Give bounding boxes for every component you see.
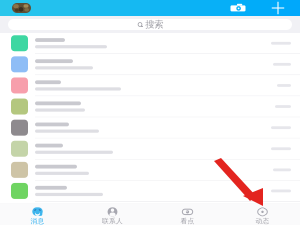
staticText: 消息 xyxy=(30,217,44,225)
button[interactable] xyxy=(0,75,300,96)
button[interactable]: 动态 xyxy=(225,204,300,225)
button[interactable] xyxy=(0,181,300,202)
staticText: 联系人 xyxy=(102,217,123,225)
button[interactable] xyxy=(0,96,300,117)
button[interactable]: Profile xyxy=(0,0,43,16)
button[interactable]: Camera xyxy=(225,0,251,16)
button[interactable]: 看点 xyxy=(150,204,225,225)
staticText: 搜索 xyxy=(145,19,163,30)
button[interactable] xyxy=(0,160,300,181)
button[interactable]: 消息 xyxy=(0,204,75,225)
button[interactable]: 联系人 xyxy=(75,204,150,225)
button[interactable] xyxy=(0,54,300,75)
button[interactable] xyxy=(0,117,300,138)
button[interactable]: Add xyxy=(265,0,291,16)
staticText: 看点 xyxy=(180,217,194,225)
button[interactable] xyxy=(0,138,300,160)
staticText: 动态 xyxy=(255,217,269,225)
button[interactable] xyxy=(0,33,300,54)
button[interactable]: 搜索 xyxy=(8,19,292,30)
